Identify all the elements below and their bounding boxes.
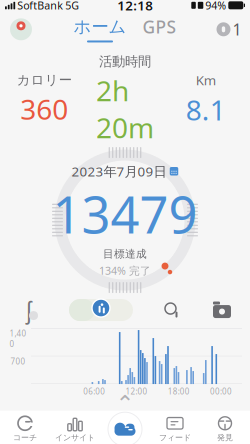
staticText: ʃ bbox=[26, 295, 32, 325]
staticText: インサイト bbox=[55, 433, 95, 443]
staticText: 8.1 bbox=[186, 91, 226, 128]
staticText: 2023年7月09日 bbox=[71, 162, 166, 180]
button[interactable]: Profile map bbox=[5, 14, 37, 44]
button[interactable]: Expand bbox=[95, 397, 155, 411]
staticText: 13479 bbox=[52, 180, 197, 247]
button[interactable]: Camera bbox=[208, 295, 236, 325]
staticText: 1,400 bbox=[9, 328, 26, 349]
button[interactable]: Activity bbox=[100, 411, 150, 444]
staticText: ⌃ bbox=[115, 391, 134, 416]
staticText: 360 bbox=[20, 90, 68, 127]
staticText: 06:00 bbox=[83, 386, 105, 397]
staticText: 5G bbox=[65, 0, 79, 12]
staticText: 1 bbox=[232, 19, 241, 40]
button[interactable]: Streak count 1 bbox=[213, 14, 245, 44]
staticText: 発見 bbox=[217, 433, 233, 443]
staticText: Km bbox=[196, 71, 216, 89]
staticText: フィード bbox=[159, 433, 191, 443]
button[interactable]: コーチ bbox=[0, 411, 50, 444]
staticText: 134% 完了 bbox=[99, 263, 151, 278]
button[interactable]: ホーム bbox=[73, 14, 126, 44]
staticText: 12:00 bbox=[125, 386, 147, 397]
button[interactable]: Map bbox=[66, 295, 136, 325]
staticText: 18:00 bbox=[168, 386, 190, 397]
staticText: 00:00 bbox=[210, 386, 232, 397]
staticText: 94% bbox=[205, 0, 226, 12]
staticText: ホーム bbox=[73, 16, 126, 37]
staticText: SoftBank bbox=[17, 0, 63, 12]
button[interactable]: Shoes bbox=[14, 295, 44, 325]
button[interactable]: Search bbox=[158, 295, 186, 325]
staticText: 活動時間 bbox=[99, 53, 151, 70]
staticText: 12:18 bbox=[117, 0, 153, 14]
button[interactable]: インサイト bbox=[50, 411, 100, 444]
button[interactable]: 発見 bbox=[200, 411, 250, 444]
staticText: 2h 20m bbox=[96, 72, 154, 146]
staticText: コーチ bbox=[13, 433, 37, 443]
staticText: 700 bbox=[10, 356, 25, 367]
button[interactable]: GPS bbox=[142, 14, 176, 44]
staticText: GPS bbox=[142, 15, 176, 38]
staticText: カロリー bbox=[17, 72, 72, 88]
staticText: 目標達成 bbox=[103, 247, 147, 260]
button[interactable]: フィード bbox=[150, 411, 200, 444]
